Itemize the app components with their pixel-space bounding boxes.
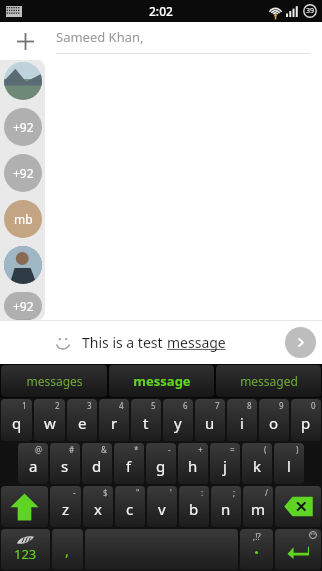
- button[interactable]: Delete: [275, 486, 321, 527]
- staticText: #: [69, 444, 75, 455]
- button[interactable]: Enter: [275, 529, 321, 570]
- staticText: messaged: [240, 373, 298, 389]
- button[interactable]: j: [210, 443, 240, 484]
- staticText: o: [269, 413, 279, 433]
- button[interactable]: b: [179, 486, 209, 527]
- staticText: +92: [13, 298, 34, 314]
- staticText: *: [134, 444, 139, 455]
- staticText: +92: [13, 119, 34, 135]
- button[interactable]: Send: [285, 327, 316, 358]
- staticText: 9: [279, 400, 284, 411]
- button[interactable]: ,: [52, 529, 83, 570]
- button[interactable]: Shift: [1, 486, 48, 527]
- staticText: This is a test: [82, 333, 167, 352]
- staticText: 3: [87, 400, 92, 411]
- staticText: Sameed Khan,: [56, 28, 144, 46]
- staticText: e: [78, 413, 87, 433]
- staticText: w: [44, 413, 56, 433]
- staticText: message: [133, 372, 191, 390]
- staticText: messages: [26, 373, 83, 389]
- button[interactable]: messaged: [216, 365, 321, 397]
- staticText: +: [198, 444, 203, 455]
- button[interactable]: a: [18, 443, 48, 484]
- button[interactable]: o: [259, 399, 289, 441]
- button[interactable]: e: [67, 399, 97, 441]
- button[interactable]: f: [114, 443, 144, 484]
- button[interactable]: q: [1, 399, 32, 441]
- button[interactable]: z: [50, 486, 81, 527]
- staticText: -: [168, 444, 171, 455]
- button[interactable]: w: [34, 399, 65, 441]
- staticText: p: [301, 413, 311, 433]
- button[interactable]: mb: [4, 200, 42, 238]
- staticText: b: [189, 499, 199, 519]
- staticText: @: [35, 444, 43, 455]
- staticText: u: [205, 413, 215, 433]
- staticText: k: [253, 456, 262, 476]
- button[interactable]: +92: [4, 108, 42, 146]
- button[interactable]: t: [131, 399, 161, 441]
- button[interactable]: messages: [1, 365, 107, 397]
- button[interactable]: 123 symbols: [1, 529, 50, 570]
- button[interactable]: s: [50, 443, 80, 484]
- button[interactable]: r: [99, 399, 129, 441]
- button[interactable]: Contact photo: [4, 246, 42, 284]
- staticText: h: [188, 456, 198, 476]
- staticText: $: [103, 487, 108, 498]
- staticText: 2: [55, 400, 60, 411]
- button[interactable]: d: [82, 443, 112, 484]
- staticText: 4: [119, 400, 124, 411]
- staticText: 2:02: [149, 3, 173, 19]
- staticText: /: [265, 487, 268, 498]
- staticText: j: [223, 456, 227, 476]
- button[interactable]: h: [178, 443, 208, 484]
- button[interactable]: message: [109, 365, 214, 397]
- staticText: message: [167, 333, 226, 352]
- staticText: f: [126, 456, 132, 476]
- button[interactable]: Insert emoji: [48, 327, 78, 357]
- button[interactable]: i: [227, 399, 257, 441]
- staticText: 0: [311, 400, 316, 411]
- staticText: v: [158, 499, 166, 519]
- staticText: s: [61, 456, 69, 476]
- staticText: d: [92, 456, 102, 476]
- button[interactable]: +92: [4, 154, 42, 192]
- staticText: =: [230, 444, 235, 455]
- staticText: n: [221, 499, 231, 519]
- button[interactable]: k: [242, 443, 272, 484]
- button[interactable]: v: [147, 486, 177, 527]
- staticText: 1: [22, 400, 27, 411]
- button[interactable]: g: [146, 443, 176, 484]
- button[interactable]: This is a test: [82, 333, 285, 352]
- button[interactable]: Contact photo: [4, 62, 42, 100]
- staticText: a: [29, 456, 38, 476]
- staticText: m: [251, 499, 266, 519]
- button[interactable]: l: [274, 443, 304, 484]
- button[interactable]: Sameed Khan,: [56, 28, 310, 54]
- staticText: c: [126, 499, 134, 519]
- button[interactable]: p: [291, 399, 321, 441]
- staticText: z: [62, 499, 70, 519]
- button[interactable]: y: [163, 399, 193, 441]
- staticText: -: [73, 487, 76, 498]
- staticText: ,: [65, 540, 70, 560]
- staticText: ': [170, 487, 172, 498]
- button[interactable]: Space: [85, 529, 238, 570]
- staticText: 123: [14, 545, 37, 563]
- button[interactable]: x: [83, 486, 113, 527]
- staticText: 5: [151, 400, 156, 411]
- button[interactable]: n: [211, 486, 241, 527]
- staticText: y: [174, 413, 182, 433]
- button[interactable]: c: [115, 486, 145, 527]
- staticText: t: [143, 413, 149, 433]
- staticText: 8: [247, 400, 252, 411]
- button[interactable]: u: [195, 399, 225, 441]
- button[interactable]: Period: [240, 529, 273, 570]
- button[interactable]: m: [243, 486, 273, 527]
- staticText: r: [111, 413, 118, 433]
- staticText: ;: [233, 487, 236, 498]
- button[interactable]: Add recipient: [10, 26, 40, 56]
- staticText: 6: [183, 400, 188, 411]
- staticText: x: [94, 499, 102, 519]
- button[interactable]: +92: [4, 292, 42, 320]
